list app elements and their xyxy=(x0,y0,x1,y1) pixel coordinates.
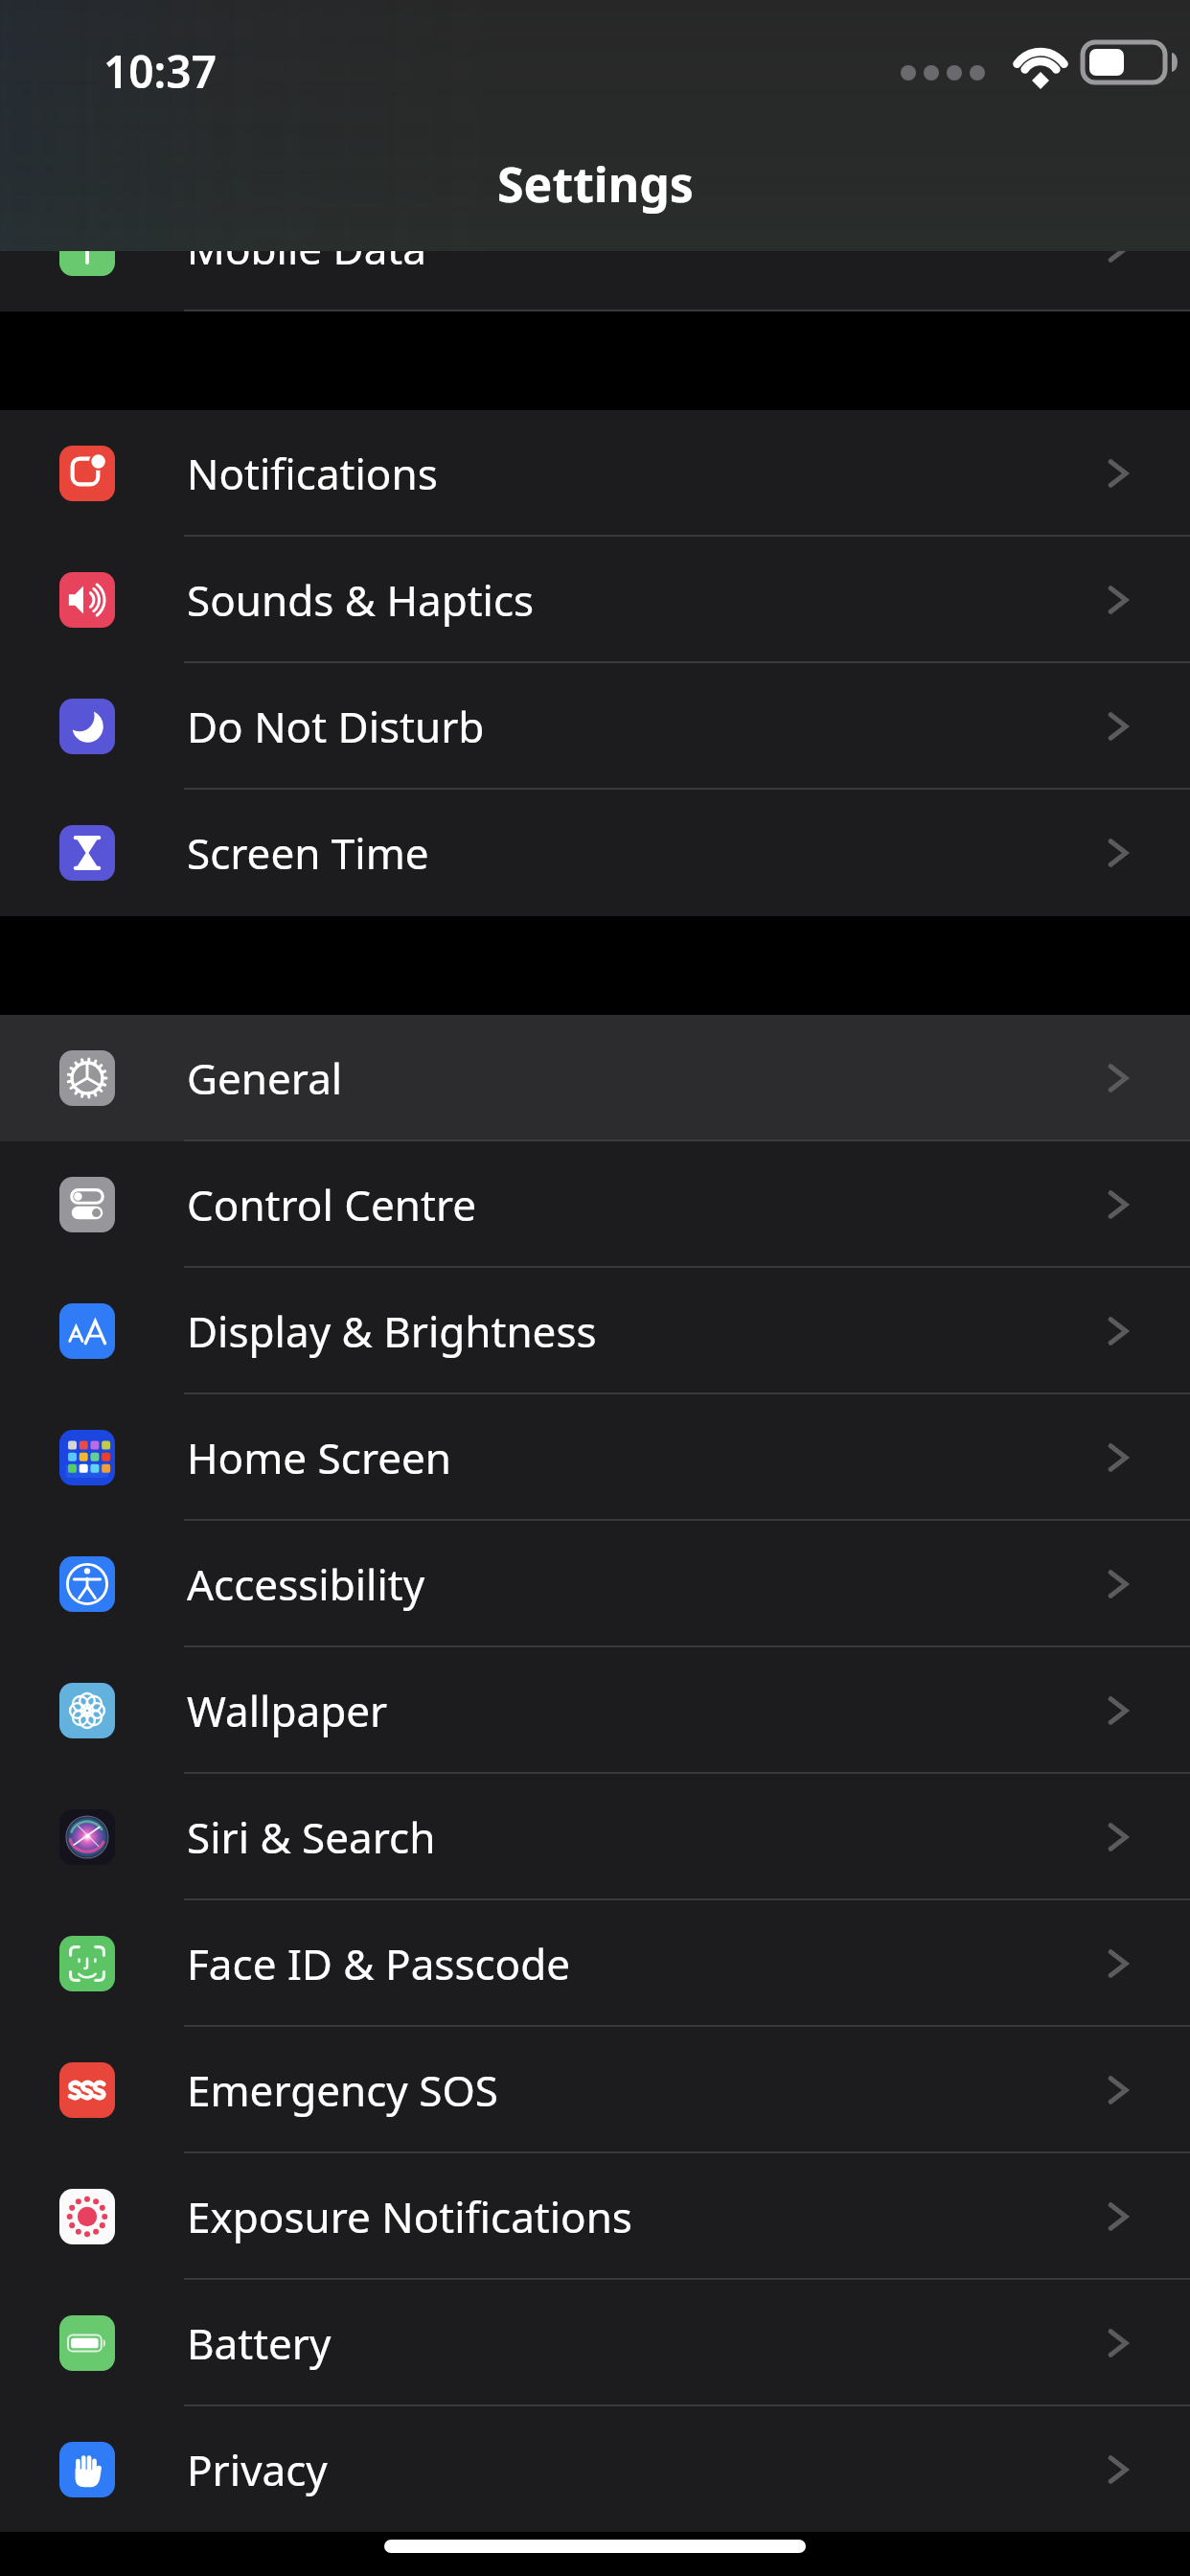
button[interactable]: Do Not Disturb xyxy=(0,663,1190,790)
staticText: Accessibility xyxy=(187,1555,425,1613)
staticText: Notifications xyxy=(187,445,438,502)
button[interactable]: Exposure Notifications xyxy=(0,2153,1190,2280)
button[interactable]: Siri & Search xyxy=(0,1774,1190,1900)
button[interactable]: Battery xyxy=(0,2280,1190,2406)
button[interactable]: Accessibility xyxy=(0,1521,1190,1647)
staticText: Display & Brightness xyxy=(187,1302,597,1360)
staticText: Sounds & Haptics xyxy=(187,571,535,629)
staticText: Siri & Search xyxy=(187,1808,436,1866)
button[interactable]: Emergency SOS xyxy=(0,2027,1190,2153)
button[interactable]: Mobile Data xyxy=(0,185,1190,311)
button[interactable]: Face ID & Passcode xyxy=(0,1900,1190,2027)
button[interactable]: Control Centre xyxy=(0,1141,1190,1268)
button[interactable]: Privacy xyxy=(0,2406,1190,2533)
staticText: Control Centre xyxy=(187,1176,477,1233)
button[interactable]: General xyxy=(0,1015,1190,1141)
staticText: Do Not Disturb xyxy=(187,698,485,755)
button[interactable]: Screen Time xyxy=(0,790,1190,916)
staticText: Screen Time xyxy=(187,824,429,882)
button[interactable]: Display & Brightness xyxy=(0,1268,1190,1394)
staticText: Battery xyxy=(187,2314,332,2372)
button[interactable]: Sounds & Haptics xyxy=(0,537,1190,663)
staticText: General xyxy=(187,1049,343,1107)
staticText: Mobile Data xyxy=(187,219,426,277)
staticText: Face ID & Passcode xyxy=(187,1935,571,1992)
staticText: Exposure Notifications xyxy=(187,2188,632,2245)
staticText: Home Screen xyxy=(187,1429,452,1486)
button[interactable]: Notifications xyxy=(0,410,1190,537)
staticText: Settings xyxy=(497,151,694,217)
button[interactable]: Wallpaper xyxy=(0,1647,1190,1774)
staticText: Wallpaper xyxy=(187,1682,388,1739)
staticText: Emergency SOS xyxy=(187,2061,498,2119)
staticText: Privacy xyxy=(187,2441,328,2498)
staticText: 10:37 xyxy=(103,41,217,102)
button[interactable]: Home Screen xyxy=(0,1394,1190,1521)
